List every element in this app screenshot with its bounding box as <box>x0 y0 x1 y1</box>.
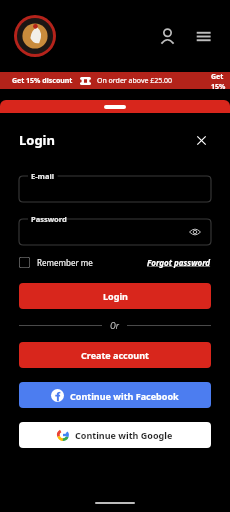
button[interactable]: Close <box>191 130 211 150</box>
staticText: Remember me <box>37 257 93 268</box>
button[interactable]: Password <box>19 214 211 245</box>
staticText: On order above £25.00 <box>97 76 173 86</box>
button[interactable]: Get 15% discount <box>0 72 230 89</box>
staticText: Login <box>19 131 55 149</box>
button[interactable] <box>0 100 230 113</box>
button[interactable]: Forgot password <box>147 257 211 268</box>
staticText: Login <box>103 290 128 302</box>
staticText: Password <box>31 214 67 224</box>
staticText: Get 15% discount <box>211 72 230 89</box>
staticText: Continue with Google <box>75 429 173 441</box>
staticText: Continue with Facebook <box>70 390 179 402</box>
button[interactable]: Continue with Facebook <box>19 382 211 408</box>
staticText: Get 15% discount <box>12 76 73 86</box>
staticText: Create account <box>81 349 149 361</box>
button[interactable]: Login <box>19 283 211 309</box>
button[interactable]: Remember me <box>19 257 93 268</box>
button[interactable]: Continue with Google <box>19 422 211 448</box>
staticText: Forgot password <box>147 257 211 268</box>
button[interactable]: Show password <box>187 224 203 240</box>
button[interactable]: Account <box>154 23 180 49</box>
button[interactable]: Create account <box>19 342 211 368</box>
button[interactable]: E-mail <box>19 171 211 202</box>
button[interactable]: Menu <box>190 23 216 49</box>
staticText: E-mail <box>31 171 54 181</box>
button[interactable]: Peri-Peri Spice Chef home <box>14 15 56 57</box>
staticText: Or <box>110 320 119 331</box>
